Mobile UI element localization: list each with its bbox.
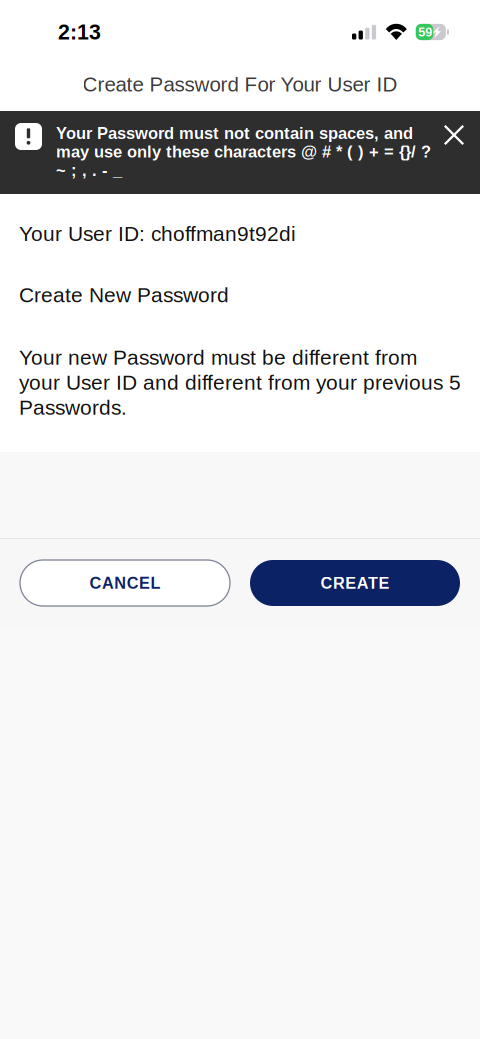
staticText: Create Password For Your User ID [82,73,397,96]
staticText: 59 [418,25,432,39]
staticText: CREATE [320,574,389,592]
staticText: CANCEL [89,574,160,592]
staticText: Your User ID: choffman9t92di [19,222,296,245]
button[interactable]: CANCEL [20,560,230,606]
button[interactable]: Close [443,111,480,146]
staticText: Create New Password [19,283,229,307]
staticText: Your Password must not contain spaces, a… [56,124,431,179]
staticText: Your new Password must be different from… [19,346,461,419]
staticText: 2:13 [58,20,101,44]
button[interactable]: CREATE [250,560,460,606]
